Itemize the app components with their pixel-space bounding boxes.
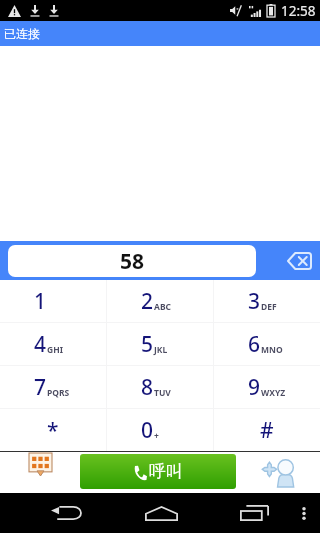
- staticText: 9: [248, 373, 261, 402]
- staticText: WXYZ: [261, 387, 285, 399]
- staticText: 8: [141, 373, 154, 402]
- button[interactable]: 6: [214, 323, 320, 365]
- button[interactable]: Add contact: [236, 452, 320, 493]
- button[interactable]: #: [214, 409, 320, 451]
- button[interactable]: 8: [107, 366, 213, 408]
- staticText: GHI: [47, 344, 63, 356]
- button[interactable]: 7: [0, 366, 106, 408]
- button[interactable]: 1: [0, 280, 106, 322]
- button[interactable]: 3: [214, 280, 320, 322]
- staticText: TUV: [154, 387, 171, 399]
- staticText: 3: [248, 287, 261, 316]
- button[interactable]: 0: [107, 409, 213, 451]
- staticText: 0: [141, 416, 154, 445]
- staticText: 已连接: [4, 26, 40, 41]
- button[interactable]: 2: [107, 280, 213, 322]
- staticText: JKL: [154, 344, 168, 356]
- button[interactable]: Backspace: [256, 241, 320, 280]
- staticText: DEF: [261, 301, 277, 313]
- staticText: 4: [34, 330, 47, 359]
- button[interactable]: *: [0, 409, 106, 451]
- button[interactable]: 4: [0, 323, 106, 365]
- staticText: +: [154, 430, 159, 442]
- staticText: #: [260, 416, 274, 445]
- staticText: MNO: [261, 344, 283, 356]
- staticText: 58: [120, 247, 145, 276]
- staticText: 5: [141, 330, 154, 359]
- staticText: PQRS: [47, 387, 70, 399]
- staticText: 7: [34, 373, 47, 402]
- button[interactable]: Recents: [206, 493, 302, 533]
- button[interactable]: Back: [18, 493, 114, 533]
- staticText: *: [47, 416, 59, 445]
- button[interactable]: 呼叫: [80, 454, 236, 489]
- button[interactable]: Dialpad: [0, 452, 80, 493]
- button[interactable]: 9: [214, 366, 320, 408]
- staticText: 6: [248, 330, 261, 359]
- staticText: ABC: [154, 301, 171, 313]
- staticText: 呼叫: [149, 461, 183, 482]
- button[interactable]: 5: [107, 323, 213, 365]
- staticText: 1: [34, 287, 47, 316]
- staticText: 2: [141, 287, 154, 316]
- staticText: 12:58: [281, 2, 316, 20]
- button[interactable]: More options: [289, 493, 319, 533]
- button[interactable]: Home: [113, 493, 209, 533]
- button[interactable]: 58: [8, 245, 256, 277]
